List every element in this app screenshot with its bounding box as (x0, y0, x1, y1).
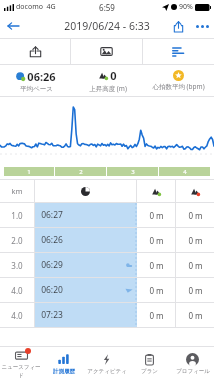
staticText: 上昇高度 (m) (89, 84, 127, 93)
staticText: 06:26 (41, 234, 63, 246)
staticText: プロフィール (176, 368, 210, 375)
staticText: 0 m (188, 260, 203, 271)
button[interactable]: 1.0 (0, 203, 214, 227)
staticText: 0 m (149, 235, 164, 246)
staticText: 平均ペース (20, 85, 53, 93)
button[interactable]: 4.0 (0, 278, 214, 302)
staticText: 1.0 (11, 210, 23, 221)
staticText: 06:26 (27, 69, 56, 84)
staticText: 0 (110, 68, 117, 83)
staticText: 6:59 (99, 2, 115, 13)
staticText: アクティビティ (87, 368, 127, 375)
staticText: 0 m (188, 235, 203, 246)
staticText: km (11, 186, 23, 196)
staticText: 計測履歴 (53, 368, 75, 375)
staticText: 心拍数平均 (bpm) (152, 82, 205, 91)
staticText: 4G (46, 2, 56, 12)
staticText: 07:23 (41, 309, 63, 321)
staticText: 06:20 (41, 284, 63, 296)
button[interactable]: Photos (71, 39, 142, 64)
staticText: 90% (179, 2, 193, 12)
staticText: 3.0 (11, 260, 23, 271)
staticText: 0 m (149, 285, 164, 296)
staticText: ニュースフィード (0, 364, 42, 378)
staticText: 4.0 (11, 310, 23, 321)
button[interactable]: Splits (143, 39, 214, 64)
button[interactable]: Share (166, 14, 190, 38)
staticText: 0 m (149, 260, 164, 271)
staticText: 06:29 (41, 259, 63, 271)
button[interactable]: More options (190, 14, 214, 38)
button[interactable]: 06:26 (0, 65, 72, 96)
button[interactable]: 計測履歴 (42, 347, 85, 380)
button[interactable]: プラン (128, 347, 171, 380)
button[interactable]: ニュースフィード (0, 347, 42, 380)
button[interactable]: 心拍数平均 (bpm) (143, 65, 214, 96)
staticText: 2 (79, 168, 83, 176)
button[interactable]: Back (0, 14, 26, 38)
staticText: 3 (131, 168, 135, 176)
staticText: docomo (16, 2, 43, 12)
staticText: 2.0 (11, 235, 23, 246)
staticText: 4.0 (11, 285, 23, 296)
staticText: 0 m (149, 210, 164, 221)
button[interactable]: 0 (72, 65, 143, 96)
button[interactable]: 4.0 (0, 303, 214, 327)
staticText: 0 m (188, 310, 203, 321)
staticText: 2019/06/24 - 6:33 (64, 19, 150, 33)
button[interactable]: アクティビティ (85, 347, 128, 380)
staticText: 06:27 (41, 209, 63, 221)
staticText: プラン (141, 368, 158, 375)
staticText: 0 m (188, 285, 203, 296)
staticText: 0 m (188, 210, 203, 221)
staticText: 0 m (149, 310, 164, 321)
button[interactable]: 2.0 (0, 228, 214, 252)
staticText: 4 (183, 168, 187, 176)
button[interactable]: プロフィール (171, 347, 214, 380)
staticText: 1 (27, 168, 31, 176)
button[interactable]: 3.0 (0, 253, 214, 277)
button[interactable]: Route map (0, 39, 70, 64)
